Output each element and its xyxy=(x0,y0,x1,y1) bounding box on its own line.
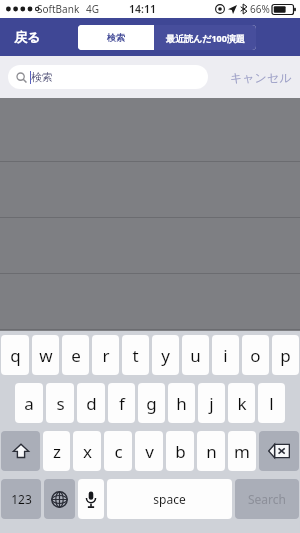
button[interactable]: Voice input xyxy=(78,479,104,519)
staticText: 戻る xyxy=(14,29,41,45)
staticText: e xyxy=(71,344,81,367)
staticText: p xyxy=(280,344,291,367)
button[interactable]: u xyxy=(182,335,209,375)
button[interactable]: v xyxy=(135,431,163,471)
button[interactable]: q xyxy=(1,335,29,375)
button[interactable]: g xyxy=(138,383,165,423)
button[interactable]: b xyxy=(166,431,194,471)
staticText: f xyxy=(119,392,125,415)
staticText: SoftBank xyxy=(37,2,80,16)
button[interactable]: 検索 xyxy=(8,65,208,89)
staticText: y xyxy=(161,344,170,367)
staticText: j xyxy=(209,392,214,415)
staticText: x xyxy=(83,440,92,463)
staticText: q xyxy=(10,344,21,367)
staticText: o xyxy=(250,344,261,367)
button[interactable]: l xyxy=(258,383,285,423)
staticText: u xyxy=(190,344,201,367)
button[interactable]: Shift xyxy=(1,431,40,471)
staticText: 検索 xyxy=(107,32,125,43)
button[interactable]: x xyxy=(73,431,101,471)
button[interactable]: 検索 xyxy=(78,25,154,50)
staticText: c xyxy=(114,440,123,463)
button[interactable]: f xyxy=(108,383,135,423)
button[interactable]: z xyxy=(43,431,70,471)
button[interactable]: Change keyboard xyxy=(44,479,75,519)
staticText: n xyxy=(206,440,217,463)
button[interactable]: e xyxy=(62,335,89,375)
button[interactable]: s xyxy=(46,383,74,423)
staticText: r xyxy=(102,344,110,367)
staticText: l xyxy=(269,392,274,415)
staticText: a xyxy=(24,392,34,415)
staticText: g xyxy=(146,392,157,415)
staticText: b xyxy=(175,440,186,463)
button[interactable]: c xyxy=(104,431,132,471)
button[interactable]: r xyxy=(92,335,119,375)
button[interactable]: j xyxy=(198,383,225,423)
button[interactable]: Search xyxy=(235,479,299,519)
staticText: z xyxy=(53,440,61,463)
staticText: s xyxy=(56,392,65,415)
staticText: i xyxy=(223,344,228,367)
button[interactable]: d xyxy=(77,383,105,423)
button[interactable]: t xyxy=(122,335,149,375)
staticText: 4G xyxy=(86,2,99,16)
button[interactable]: p xyxy=(272,335,299,375)
staticText: h xyxy=(176,392,187,415)
staticText: 最近読んだ100演題 xyxy=(166,32,245,44)
button[interactable]: w xyxy=(32,335,59,375)
button[interactable]: n xyxy=(197,431,225,471)
staticText: m xyxy=(234,440,250,463)
button[interactable]: m xyxy=(228,431,256,471)
staticText: キャンセル xyxy=(230,70,292,85)
button[interactable]: 123 xyxy=(1,479,41,519)
button[interactable]: k xyxy=(228,383,255,423)
button[interactable]: space xyxy=(107,479,232,519)
button[interactable]: キャンセル xyxy=(222,66,300,89)
staticText: t xyxy=(132,344,139,367)
button[interactable]: 戻る xyxy=(10,25,45,49)
button[interactable]: i xyxy=(212,335,239,375)
staticText: 123 xyxy=(11,491,32,507)
staticText: d xyxy=(86,392,97,415)
button[interactable]: 最近読んだ100演題 xyxy=(154,25,256,50)
staticText: Search xyxy=(248,491,286,507)
button[interactable]: y xyxy=(152,335,179,375)
button[interactable]: a xyxy=(15,383,43,423)
staticText: 14:11 xyxy=(129,2,156,16)
staticText: 検索 xyxy=(31,70,53,84)
staticText: space xyxy=(153,491,186,507)
button[interactable]: Backspace xyxy=(259,431,299,471)
staticText: v xyxy=(145,440,154,463)
button[interactable]: h xyxy=(168,383,195,423)
staticText: 66% xyxy=(250,2,270,16)
button[interactable]: o xyxy=(242,335,269,375)
staticText: k xyxy=(237,392,247,415)
staticText: w xyxy=(39,344,53,367)
